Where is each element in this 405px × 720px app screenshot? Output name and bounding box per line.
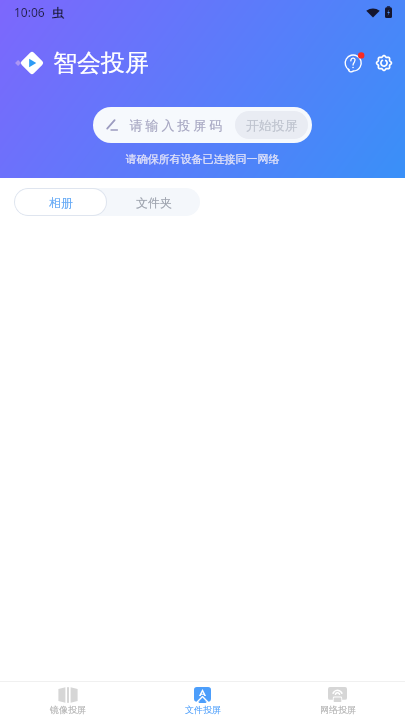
button[interactable]: Help: [339, 48, 369, 78]
button[interactable]: 请输入投屏码: [93, 107, 312, 143]
staticText: 开始投屏: [246, 117, 298, 133]
staticText: 文件夹: [136, 195, 172, 210]
staticText: 文件投屏: [185, 704, 221, 715]
staticText: 请输入投屏码: [128, 117, 224, 133]
button[interactable]: 相册: [15, 189, 106, 215]
button[interactable]: 镜像投屏: [0, 682, 135, 720]
button[interactable]: Settings: [369, 48, 399, 78]
button[interactable]: 开始投屏: [235, 111, 308, 139]
staticText: 镜像投屏: [50, 704, 86, 715]
staticText: 虫: [52, 5, 64, 20]
staticText: 10:06: [14, 4, 45, 20]
staticText: 智会投屏: [53, 48, 149, 78]
button[interactable]: 文件夹: [107, 188, 200, 216]
button[interactable]: 网络投屏: [270, 682, 405, 720]
button[interactable]: 文件投屏: [135, 682, 270, 720]
staticText: 网络投屏: [320, 704, 356, 715]
staticText: 相册: [49, 195, 73, 210]
staticText: 请确保所有设备已连接同一网络: [0, 152, 405, 166]
